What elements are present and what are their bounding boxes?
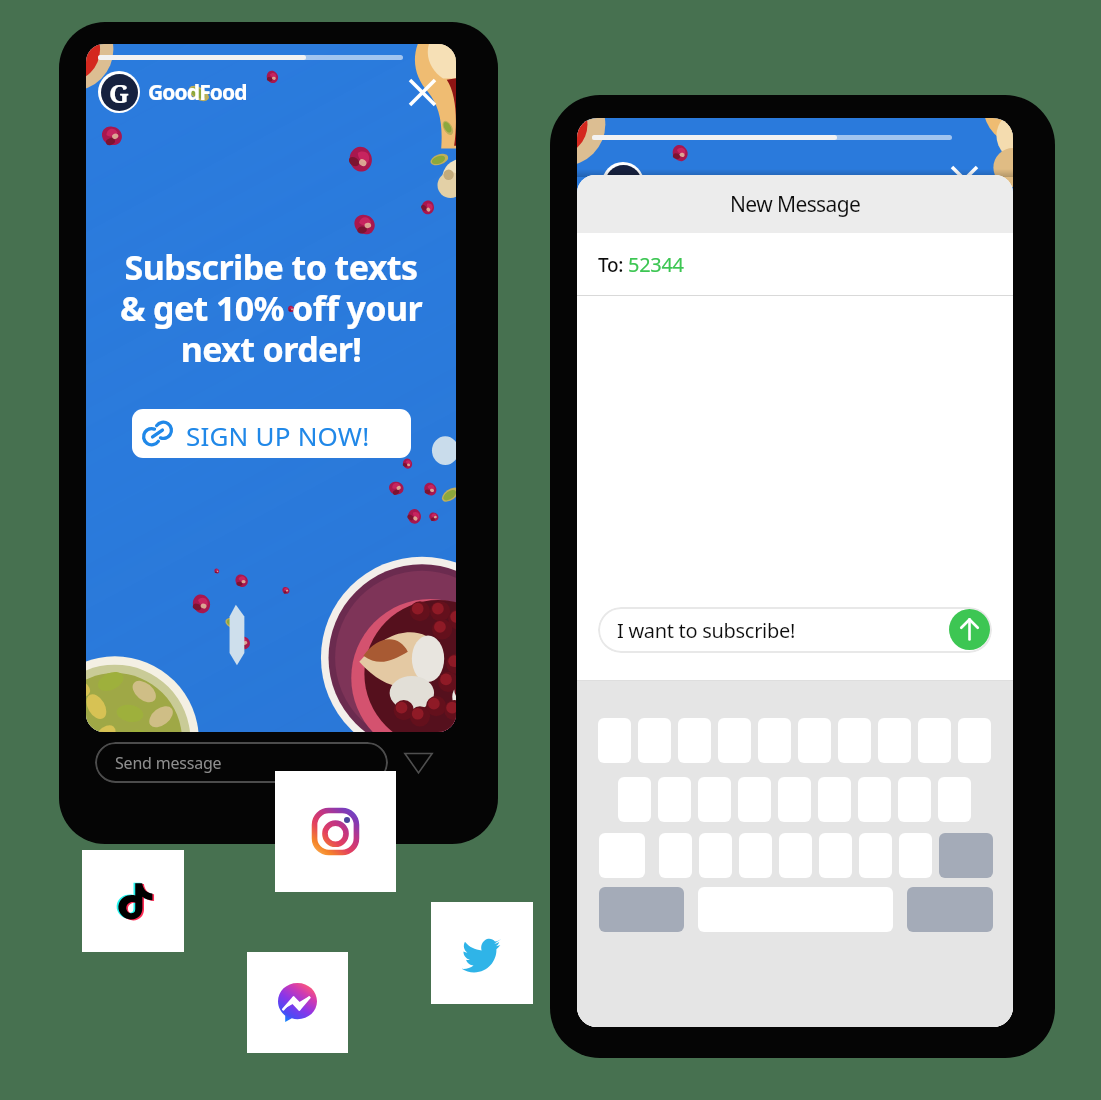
button[interactable]: Send message xyxy=(95,742,388,783)
button[interactable] xyxy=(779,833,812,878)
button[interactable] xyxy=(958,718,991,763)
staticText: GoodFood xyxy=(148,78,247,107)
button[interactable]: Numbers xyxy=(599,887,684,932)
button[interactable] xyxy=(678,718,711,763)
button[interactable]: Return xyxy=(907,887,993,932)
button[interactable] xyxy=(918,718,951,763)
button[interactable] xyxy=(598,718,631,763)
button[interactable] xyxy=(818,777,851,822)
staticText: Subscribe to texts & get 10% off your ne… xyxy=(106,244,436,372)
staticText: I want to subscribe! xyxy=(617,617,796,644)
staticText: Send message xyxy=(115,752,222,774)
button[interactable]: G xyxy=(98,71,247,113)
button[interactable]: I want to subscribe! xyxy=(598,607,992,653)
staticText: New Message xyxy=(730,190,861,219)
button[interactable]: Close xyxy=(404,74,441,111)
button[interactable] xyxy=(859,833,892,878)
button[interactable] xyxy=(758,718,791,763)
button[interactable] xyxy=(819,833,852,878)
button[interactable] xyxy=(698,777,731,822)
button[interactable] xyxy=(739,833,772,878)
button[interactable] xyxy=(899,833,932,878)
button[interactable] xyxy=(798,718,831,763)
button[interactable] xyxy=(938,777,971,822)
button[interactable] xyxy=(718,718,751,763)
button[interactable]: Twitter xyxy=(431,902,533,1004)
button[interactable]: TikTok xyxy=(82,850,184,952)
button[interactable] xyxy=(878,718,911,763)
button[interactable] xyxy=(618,777,651,822)
button[interactable] xyxy=(898,777,931,822)
staticText: To: xyxy=(598,252,628,278)
staticText: SIGN UP NOW! xyxy=(186,418,370,453)
button[interactable]: SIGN UP NOW! xyxy=(132,409,411,458)
button[interactable] xyxy=(658,777,691,822)
button[interactable] xyxy=(699,833,732,878)
button[interactable] xyxy=(638,718,671,763)
button[interactable]: Send message xyxy=(949,609,990,650)
staticText: G xyxy=(109,75,130,110)
button[interactable]: Backspace xyxy=(939,833,993,878)
staticText: 52344 xyxy=(628,251,684,278)
button[interactable] xyxy=(738,777,771,822)
button[interactable] xyxy=(858,777,891,822)
button[interactable]: Instagram xyxy=(275,771,396,892)
button[interactable] xyxy=(778,777,811,822)
button[interactable] xyxy=(659,833,692,878)
button[interactable] xyxy=(838,718,871,763)
button[interactable]: Messenger xyxy=(247,952,348,1053)
button[interactable]: Send xyxy=(399,741,437,779)
